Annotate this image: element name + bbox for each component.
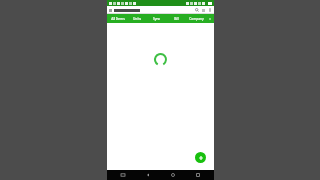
button[interactable]: Sync [146,14,166,23]
button[interactable]: Units [127,14,146,23]
staticText: Sync [153,17,160,21]
button[interactable]: Company [186,14,206,23]
other: More options [208,8,212,12]
button[interactable]: Add [195,152,206,163]
button[interactable]: Recent apps [189,170,207,180]
staticText: Company [189,17,204,21]
staticText: All Items [111,17,125,21]
button[interactable]: Home [164,170,182,180]
other: Search [195,8,199,12]
staticText: Bill [174,17,179,21]
button[interactable]: More tabs [206,14,213,23]
button[interactable]: Bill [166,14,186,23]
staticText: Units [133,17,141,21]
button[interactable]: Back [139,170,157,180]
button[interactable]: Site info [107,6,214,14]
button[interactable]: All Items [108,14,127,23]
button[interactable]: Screenshot [114,170,132,180]
